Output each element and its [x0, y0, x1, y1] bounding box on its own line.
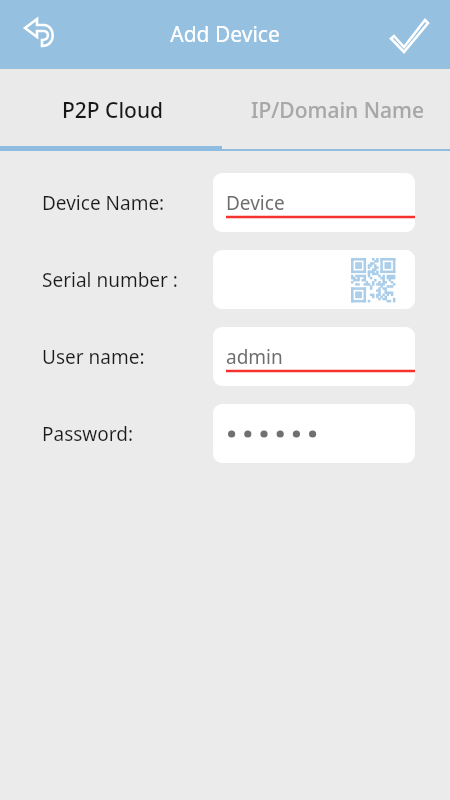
button[interactable]: IP/Domain Name	[225, 69, 450, 151]
staticText: admin	[226, 344, 283, 370]
button[interactable]: Device	[213, 173, 415, 232]
staticText: Device Name:	[42, 190, 165, 216]
button[interactable]: Back	[18, 12, 64, 58]
staticText: Device	[226, 190, 285, 216]
staticText: Password:	[42, 421, 134, 447]
staticText: P2P Cloud	[62, 96, 164, 125]
staticText: Add Device	[170, 20, 280, 49]
button[interactable]: P2P Cloud	[0, 69, 225, 151]
staticText: IP/Domain Name	[251, 96, 424, 125]
button[interactable]	[213, 404, 415, 463]
button[interactable]: Confirm	[388, 13, 432, 57]
button[interactable]: admin	[213, 327, 415, 386]
button[interactable]: Scan QR code	[351, 258, 395, 302]
button[interactable]: Scan QR code	[213, 250, 415, 309]
staticText: User name:	[42, 344, 145, 370]
staticText: Serial number :	[42, 267, 178, 293]
